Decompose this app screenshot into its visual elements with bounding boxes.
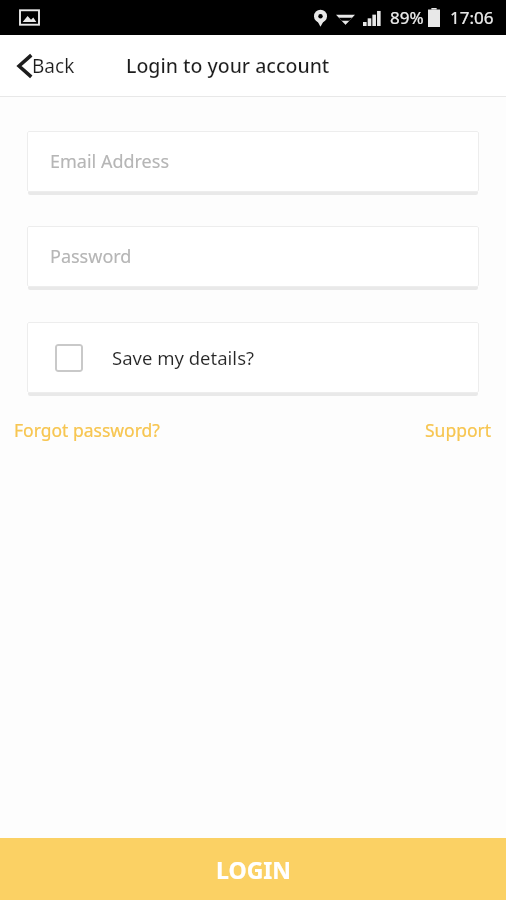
button[interactable]: Forgot password? bbox=[14, 414, 160, 446]
staticText: Login to your account bbox=[126, 52, 330, 79]
staticText: Password bbox=[50, 244, 132, 269]
staticText: 89% bbox=[390, 6, 424, 29]
button[interactable]: LOGIN bbox=[0, 838, 506, 900]
staticText: LOGIN bbox=[216, 854, 291, 885]
button[interactable]: Back bbox=[0, 45, 89, 87]
button[interactable]: Email Address bbox=[27, 131, 479, 192]
staticText: Back bbox=[32, 53, 75, 79]
button[interactable]: Save my details? bbox=[27, 322, 479, 393]
staticText: Email Address bbox=[50, 149, 170, 174]
staticText: 17:06 bbox=[450, 6, 494, 29]
button[interactable]: Password bbox=[27, 226, 479, 287]
button[interactable]: Support bbox=[425, 414, 492, 446]
staticText: Save my details? bbox=[112, 345, 255, 370]
